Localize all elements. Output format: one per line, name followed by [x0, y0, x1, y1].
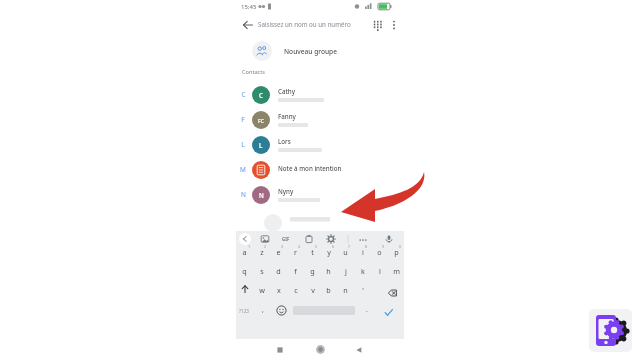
button[interactable]: GIF: [282, 236, 290, 242]
button[interactable]: k: [355, 264, 370, 278]
staticText: u: [343, 247, 348, 257]
staticText: 5: [315, 244, 318, 249]
staticText: c: [294, 285, 298, 295]
staticText: 15:45: [241, 3, 257, 11]
staticText: C: [259, 91, 263, 99]
staticText: n: [343, 285, 348, 295]
button[interactable]: N: [236, 182, 404, 207]
button[interactable]: Home: [314, 343, 327, 356]
button[interactable]: o: [372, 245, 387, 259]
button[interactable]: ,: [262, 305, 264, 314]
button[interactable]: i: [355, 245, 370, 259]
button[interactable]: t: [305, 245, 320, 259]
button[interactable]: M: [236, 157, 404, 182]
staticText: a: [242, 247, 247, 257]
button[interactable]: p: [389, 245, 404, 259]
staticText: l: [379, 266, 381, 276]
button[interactable]: Recents: [274, 344, 286, 356]
button[interactable]: ': [355, 283, 370, 297]
staticText: v: [311, 285, 315, 295]
button[interactable]: Enter: [382, 306, 395, 319]
button[interactable]: L: [236, 132, 404, 157]
staticText: q: [242, 266, 247, 276]
button[interactable]: m: [389, 264, 404, 278]
button[interactable]: ?123: [239, 308, 249, 314]
staticText: N: [241, 190, 246, 199]
button[interactable]: c: [288, 283, 303, 297]
staticText: L: [259, 141, 263, 149]
staticText: M: [240, 165, 246, 174]
staticText: Nouveau groupe: [284, 47, 337, 56]
staticText: N: [259, 191, 264, 199]
staticText: y: [327, 247, 331, 257]
button[interactable]: C: [236, 82, 404, 107]
button[interactable]: z: [254, 245, 269, 259]
button[interactable]: g: [305, 264, 320, 278]
staticText: Fanny: [278, 112, 296, 120]
staticText: 3: [281, 244, 284, 249]
staticText: p: [394, 247, 399, 257]
button[interactable]: More options: [386, 17, 402, 33]
button[interactable]: Backspace: [384, 286, 398, 300]
staticText: L: [241, 140, 245, 149]
staticText: d: [276, 266, 281, 276]
button[interactable]: d: [271, 264, 286, 278]
button[interactable]: a: [237, 245, 252, 259]
staticText: g: [310, 266, 315, 276]
button[interactable]: l: [372, 264, 387, 278]
staticText: 1: [248, 244, 251, 249]
button[interactable]: n: [338, 283, 353, 297]
staticText: z: [260, 247, 264, 257]
staticText: Saisissez un nom ou un numéro: [258, 20, 351, 28]
button[interactable]: Nouveau groupe: [236, 37, 404, 65]
staticText: o: [377, 247, 382, 257]
staticText: w: [259, 285, 265, 295]
staticText: Lors: [278, 137, 291, 145]
button[interactable]: w: [254, 283, 269, 297]
staticText: Cathy: [278, 87, 295, 95]
staticText: m: [393, 266, 400, 276]
staticText: t: [311, 247, 314, 257]
staticText: 8: [365, 244, 368, 249]
button[interactable]: r: [288, 245, 303, 259]
button[interactable]: Close toolbar: [239, 233, 251, 245]
staticText: F: [241, 115, 245, 124]
staticText: 0: [399, 244, 402, 249]
button[interactable]: More: [358, 235, 368, 245]
staticText: Note à mon intention: [278, 164, 342, 172]
button[interactable]: Back: [353, 344, 365, 356]
button[interactable]: Shift: [238, 282, 252, 296]
staticText: s: [260, 266, 264, 276]
staticText: e: [276, 247, 281, 257]
button[interactable]: Back: [239, 17, 255, 33]
staticText: r: [294, 247, 297, 257]
button[interactable]: e: [271, 245, 286, 259]
button[interactable]: Dialpad: [369, 17, 385, 33]
button[interactable]: f: [288, 264, 303, 278]
button[interactable]: Emoji: [276, 305, 287, 316]
button[interactable]: b: [321, 283, 336, 297]
staticText: j: [345, 266, 347, 276]
button[interactable]: y: [321, 245, 336, 259]
staticText: 7: [348, 244, 351, 249]
button[interactable]: Stickers: [260, 234, 270, 244]
button[interactable]: Keyboard settings: [326, 234, 336, 244]
button[interactable]: x: [271, 283, 286, 297]
staticText: ': [362, 285, 364, 295]
staticText: h: [326, 266, 331, 276]
staticText: 2: [264, 244, 267, 249]
button[interactable]: u: [338, 245, 353, 259]
button[interactable]: Voice input: [384, 234, 394, 244]
button[interactable]: F: [236, 107, 404, 132]
button[interactable]: q: [237, 264, 252, 278]
button[interactable]: .: [366, 305, 368, 314]
button[interactable]: s: [254, 264, 269, 278]
button[interactable]: h: [321, 264, 336, 278]
button[interactable]: v: [305, 283, 320, 297]
staticText: b: [326, 285, 331, 295]
button[interactable]: Clipboard: [304, 234, 314, 244]
staticText: x: [277, 285, 281, 295]
staticText: Nyny: [278, 187, 294, 195]
button[interactable]: j: [338, 264, 353, 278]
